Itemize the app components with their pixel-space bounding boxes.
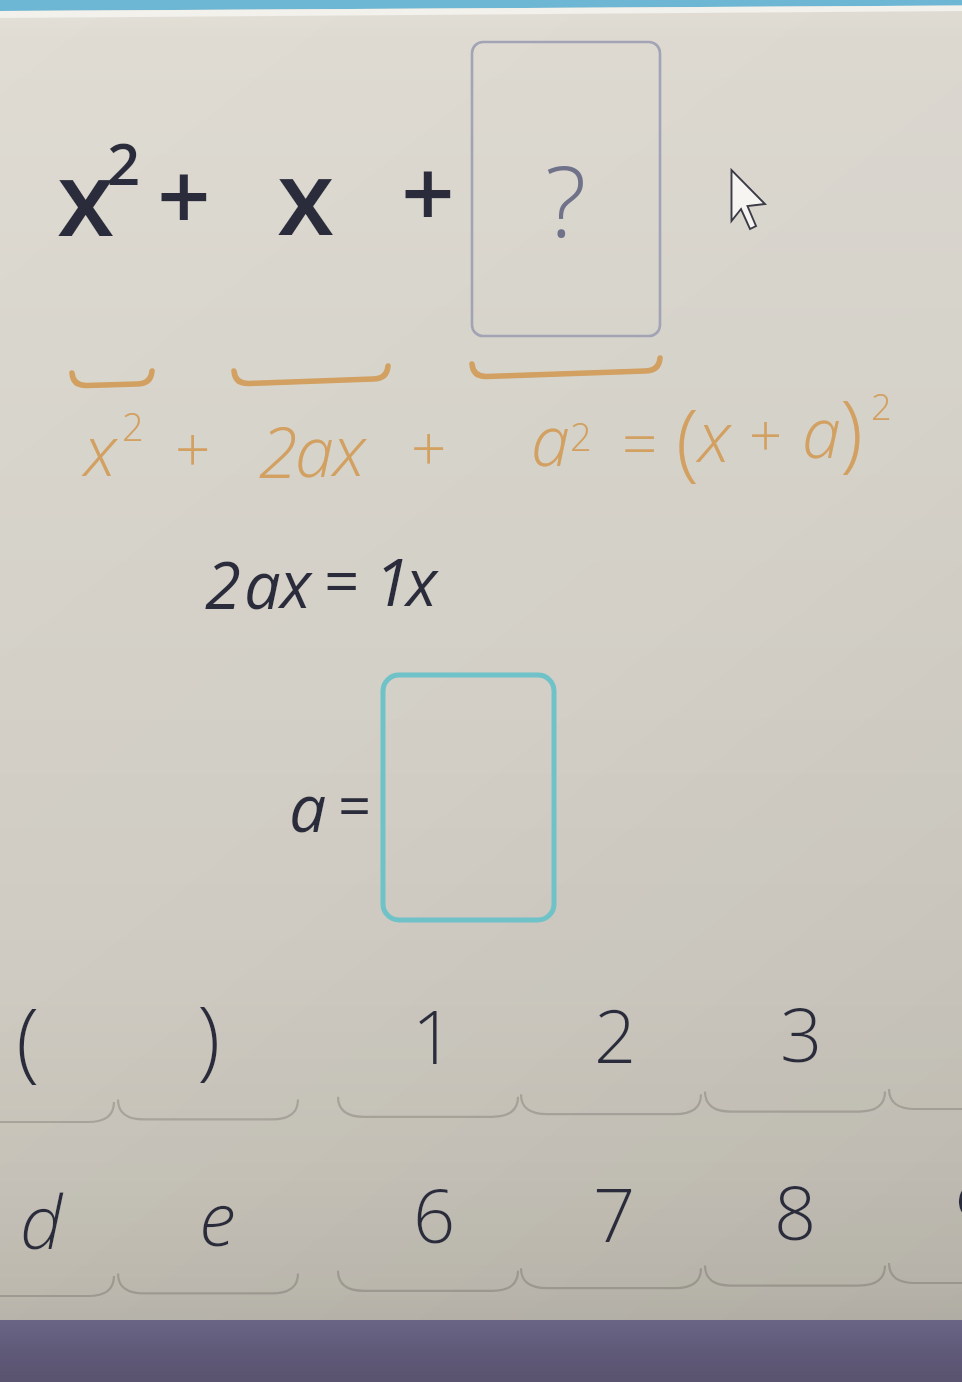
staticText: 2	[107, 123, 141, 202]
staticText: 9	[955, 1159, 962, 1260]
staticText: )	[197, 977, 221, 1094]
staticText: x	[84, 401, 117, 496]
staticText: 6	[413, 1164, 456, 1265]
staticText: 7	[593, 1163, 636, 1264]
staticText: (	[16, 979, 40, 1096]
staticText: 3	[780, 983, 823, 1084]
staticText: 2	[259, 403, 298, 498]
button[interactable]: Key	[0, 1136, 116, 1296]
staticText: 1	[412, 985, 455, 1086]
staticText: 2	[570, 410, 592, 462]
staticText: x	[280, 539, 312, 628]
staticText: +	[411, 405, 447, 489]
button[interactable]: Key	[519, 962, 703, 1122]
staticText: x	[698, 387, 731, 482]
staticText: d	[20, 1170, 63, 1271]
staticText: e	[199, 1167, 236, 1268]
staticText: +	[175, 406, 211, 490]
staticText: a	[244, 540, 281, 629]
staticText: a	[289, 761, 327, 851]
staticText: a	[295, 402, 334, 497]
button[interactable]: Key	[703, 1136, 887, 1296]
button[interactable]: Key	[116, 1136, 300, 1296]
staticText: 1	[374, 537, 410, 626]
staticText: x	[57, 125, 115, 267]
button[interactable]: Key	[703, 962, 887, 1122]
staticText: 2	[871, 382, 892, 431]
staticText: 8	[774, 1161, 817, 1262]
staticText: a	[531, 391, 570, 486]
other: Pointer	[729, 167, 773, 233]
staticText: x	[333, 401, 366, 496]
staticText: ?	[545, 132, 587, 265]
staticText: )	[840, 372, 863, 486]
staticText: a	[802, 383, 841, 478]
staticText: +	[157, 131, 211, 259]
staticText: =	[324, 538, 360, 622]
button[interactable]: Key	[336, 962, 520, 1122]
staticText: x	[277, 124, 335, 266]
staticText: 2	[122, 400, 144, 452]
staticText: 2	[594, 984, 637, 1085]
button[interactable]: Unknown term	[472, 42, 660, 336]
button[interactable]: Key	[519, 1136, 703, 1296]
staticText: x	[406, 537, 438, 626]
staticText: +	[401, 128, 455, 256]
staticText: 2	[205, 540, 241, 629]
button[interactable]: Key	[336, 1136, 520, 1296]
staticText: (	[676, 381, 699, 495]
staticText: +	[749, 395, 783, 474]
button[interactable]: Key	[887, 1136, 962, 1296]
button[interactable]: Key	[887, 962, 962, 1122]
staticText: =	[622, 400, 658, 484]
button[interactable]: Key	[0, 962, 116, 1122]
button[interactable]: Key	[116, 962, 300, 1122]
button[interactable]: Answer field	[383, 675, 554, 920]
staticText: =	[338, 765, 372, 844]
